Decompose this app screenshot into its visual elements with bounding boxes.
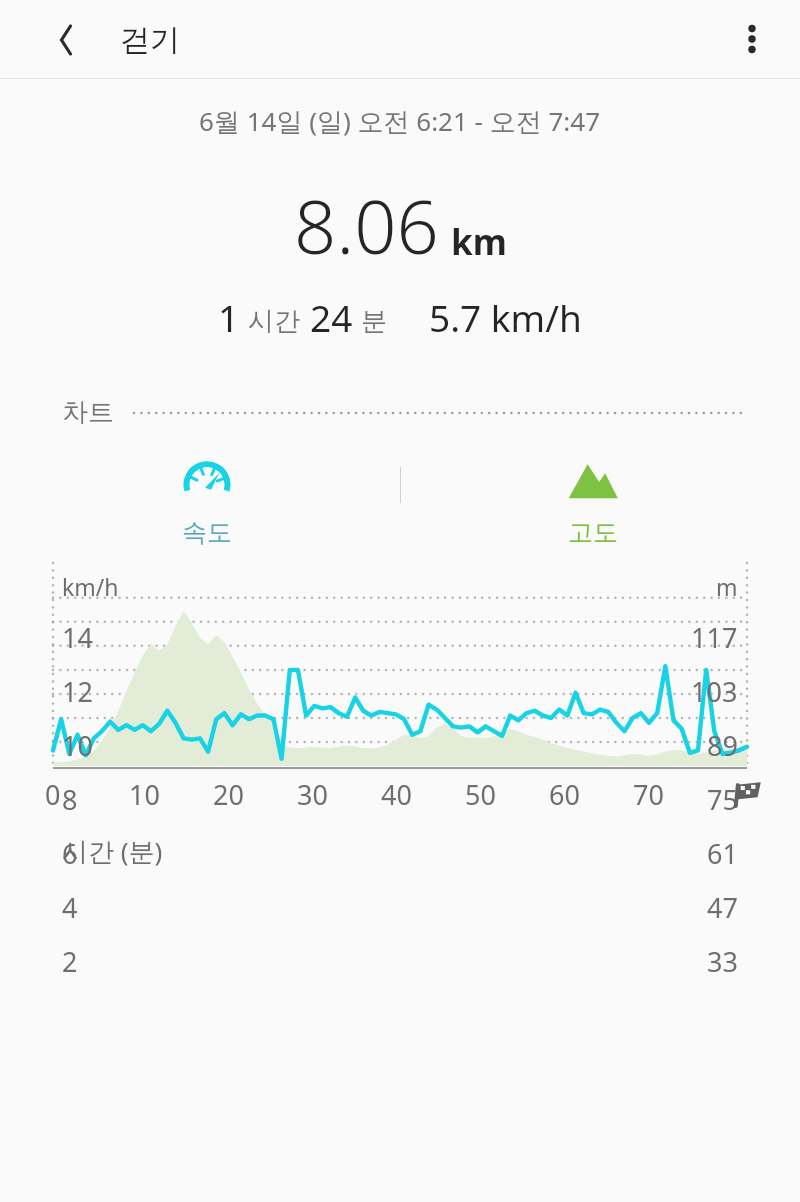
staticText: 70 bbox=[633, 776, 664, 813]
button[interactable]: More options bbox=[722, 10, 782, 70]
staticText: km/h bbox=[62, 571, 119, 602]
staticText: 2 bbox=[62, 943, 78, 980]
staticText: 6월 14일 (일) 오전 6:21 - 오전 7:47 bbox=[199, 103, 601, 139]
staticText: 걷기 bbox=[120, 21, 180, 59]
button[interactable]: Back bbox=[42, 16, 90, 64]
staticText: 75 bbox=[707, 781, 738, 818]
staticText: 5.7 km/h bbox=[429, 292, 582, 342]
staticText: 1 bbox=[218, 292, 240, 342]
button[interactable]: 속도 bbox=[162, 449, 252, 554]
staticText: 20 bbox=[213, 776, 244, 813]
staticText: 시간 (분) bbox=[62, 833, 163, 869]
staticText: 8.06 bbox=[294, 175, 439, 276]
other: Finish bbox=[732, 778, 764, 810]
staticText: m bbox=[716, 571, 738, 602]
staticText: 10 bbox=[62, 727, 93, 764]
staticText: 40 bbox=[381, 776, 412, 813]
staticText: 고도 bbox=[568, 517, 618, 548]
staticText: km bbox=[451, 218, 507, 266]
staticText: 12 bbox=[62, 673, 93, 710]
staticText: 차트 bbox=[62, 396, 114, 429]
staticText: 10 bbox=[129, 776, 160, 813]
staticText: 33 bbox=[707, 943, 738, 980]
staticText: 60 bbox=[549, 776, 580, 813]
staticText: 속도 bbox=[182, 517, 232, 548]
staticText: 4 bbox=[62, 889, 78, 926]
staticText: 103 bbox=[691, 673, 738, 710]
staticText: 8 bbox=[62, 781, 78, 818]
staticText: 24 bbox=[310, 292, 353, 342]
staticText: 30 bbox=[297, 776, 328, 813]
staticText: 0 bbox=[45, 776, 61, 813]
staticText: 시간 bbox=[248, 305, 300, 338]
button[interactable]: 고도 bbox=[548, 449, 638, 554]
staticText: 분 bbox=[361, 305, 387, 338]
staticText: 6 bbox=[62, 835, 78, 872]
staticText: 50 bbox=[465, 776, 496, 813]
staticText: 117 bbox=[691, 619, 738, 656]
staticText: 89 bbox=[707, 727, 738, 764]
staticText: 47 bbox=[707, 889, 738, 926]
staticText: 14 bbox=[62, 619, 93, 656]
staticText: 61 bbox=[707, 835, 738, 872]
